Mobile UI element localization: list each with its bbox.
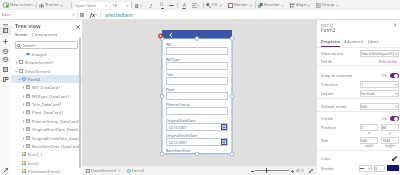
button[interactable] [166, 77, 228, 85]
button[interactable]: Media [0, 54, 11, 64]
button[interactable]: Snap to columns [390, 73, 399, 78]
button[interactable]: FabricTestExportV2 [360, 50, 399, 57]
button[interactable]: Expand [0, 165, 11, 175]
button[interactable]: fx [87, 10, 100, 19]
staticText: WOType_DataCard1 [32, 94, 70, 99]
staticText: 1040 [382, 138, 391, 143]
button[interactable]: Icon2 [11, 159, 82, 167]
button[interactable]: Edit [360, 103, 399, 110]
button[interactable]: Vertical [360, 90, 399, 97]
button[interactable]: Strikethrough [167, 0, 176, 10]
button[interactable]: Screens [15, 32, 27, 39]
button[interactable]: Menu [0, 21, 11, 31]
button[interactable] [166, 62, 228, 70]
button[interactable]: Reorder [258, 0, 294, 10]
button[interactable]: Tree view [0, 26, 11, 35]
button[interactable]: Insert [0, 36, 11, 46]
button[interactable]: Font color [179, 0, 188, 10]
button[interactable] [359, 165, 372, 172]
button[interactable]: Expand formula bar [78, 10, 86, 19]
button[interactable]: (Unknown)Form2 [11, 167, 82, 175]
button[interactable]: Bold [134, 0, 145, 10]
button[interactable]: BasicStartDate_DataCard1 [11, 142, 82, 150]
staticText: Icon2_1 [28, 152, 43, 157]
button[interactable]: PlannerGroup_DataCard1 [11, 117, 82, 125]
button[interactable]: 0 [360, 124, 378, 131]
button[interactable]: Data [0, 46, 11, 56]
staticText: Fill [212, 2, 218, 8]
button[interactable]: Close tree view [74, 23, 81, 30]
button[interactable] [166, 153, 228, 155]
button[interactable]: Collapse panel [392, 22, 398, 28]
button[interactable]: 640 [360, 137, 378, 144]
button[interactable]: Underline [157, 0, 166, 10]
button[interactable]: 88 [381, 124, 399, 131]
button[interactable]: Form2 [11, 75, 82, 83]
button[interactable]: Back [162, 30, 232, 39]
button[interactable]: Group [316, 0, 348, 10]
button[interactable]: Icon2_1 [11, 150, 82, 158]
button[interactable]: Zoom in [289, 168, 295, 174]
button[interactable]: Properties [321, 39, 340, 46]
button[interactable] [166, 92, 228, 100]
button[interactable]: Advanced [344, 39, 364, 46]
button[interactable] [166, 107, 228, 115]
button[interactable] [166, 47, 228, 55]
button[interactable]: Fill [206, 0, 230, 10]
staticText: Icon2 [28, 161, 39, 166]
button[interactable]: 18 [111, 2, 130, 9]
button[interactable]: BrowseScreen1 [11, 58, 82, 66]
button[interactable]: OriginalFinishDate_DataCard1 [11, 134, 82, 142]
button[interactable]: 1040 [381, 137, 399, 144]
button[interactable]: Italic [146, 0, 155, 10]
staticText: Title_DataCard1 [32, 102, 62, 107]
button[interactable]: Components [32, 32, 58, 39]
button[interactable]: Zoom out [249, 168, 255, 174]
button[interactable]: DetailScreen1 [11, 67, 82, 75]
button[interactable]: Plant_DataCard1 [11, 108, 82, 116]
button[interactable]: Zoom level [255, 167, 289, 174]
button[interactable]: Edit fields [379, 59, 398, 64]
button[interactable]: Form2 [126, 167, 146, 174]
button[interactable]: Fit to window [307, 167, 314, 174]
staticText: Search [23, 43, 36, 48]
button[interactable]: New screen [3, 0, 41, 10]
button[interactable]: Advanced [0, 64, 11, 74]
staticText: Color [321, 156, 332, 161]
staticText: Size [321, 138, 329, 143]
button[interactable]: 0 [374, 165, 385, 172]
button[interactable]: OriginalStartDate_DataCard1 [11, 125, 82, 133]
button[interactable]: Color picker [390, 154, 398, 162]
staticText: BasicStartDate [166, 148, 191, 153]
staticText: U [160, 1, 164, 8]
button[interactable]: Search [15, 41, 78, 49]
button[interactable]: 12/31/2001 [166, 123, 228, 131]
button[interactable]: Title_DataCard1 [11, 100, 82, 108]
button[interactable]: 12/31/2001 [166, 138, 228, 146]
button[interactable]: Alignment [191, 0, 202, 10]
button[interactable]: WO_DataCard1 [11, 83, 82, 91]
button[interactable]: WOType_DataCard1 [11, 92, 82, 100]
staticText: DetailScreen1 [25, 69, 51, 74]
button[interactable]: Pick date [221, 139, 227, 145]
button[interactable]: Item [0, 10, 77, 19]
button[interactable]: DetailScreen1 [85, 167, 122, 174]
staticText: 88 [382, 125, 387, 130]
button[interactable]: Theme [39, 0, 73, 10]
button[interactable]: 1 [360, 81, 399, 88]
button[interactable]: Image2 [11, 50, 82, 58]
staticText: selectedItem [105, 12, 133, 18]
button[interactable]: Open Sans [74, 2, 109, 9]
button[interactable]: Visible [390, 116, 399, 121]
staticText: Form2 [28, 77, 41, 82]
staticText: 12/31/2001 [168, 140, 188, 145]
button[interactable]: Ideas [368, 39, 379, 46]
staticText: Reorder [264, 2, 280, 8]
button[interactable]: Components [0, 74, 11, 84]
staticText: New screen [10, 2, 33, 8]
button[interactable]: Border [228, 0, 262, 10]
button[interactable]: Pick date [221, 124, 227, 130]
button[interactable]: Align [290, 0, 318, 10]
staticText: Plant_DataCard1 [32, 110, 64, 115]
